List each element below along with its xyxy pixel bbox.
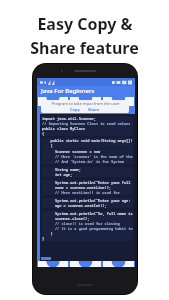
staticText: Share feature — [30, 37, 139, 59]
staticText: // It is a good programming habit to clo… — [42, 226, 133, 231]
staticText: String name; — [42, 167, 81, 172]
button[interactable]: Share — [84, 106, 104, 113]
staticText: Scanner scanner = new Scanner(System.in)… — [42, 149, 133, 154]
staticText: { — [42, 143, 53, 148]
button[interactable]: Program card — [103, 97, 134, 106]
staticText: // close() is used for closing scanner — [42, 221, 133, 226]
staticText: // Importing Scanner Class to read value… — [42, 121, 131, 126]
staticText: System.out.println("Enter your age: "); — [42, 198, 133, 203]
staticText: System.out.println("So, full name is " +… — [42, 211, 133, 216]
staticText: Easy Copy & — [37, 13, 133, 35]
staticText: name = scanner.nextLine(); — [42, 185, 111, 190]
staticText: public class MyClass — [42, 126, 86, 131]
staticText: Program to take input from the user — [51, 101, 120, 106]
staticText: // Here nextLine() is used for taking in… — [42, 190, 133, 195]
staticText: age = scanner.nextInt(); — [42, 203, 107, 208]
staticText: public static void main(String args[]) — [42, 138, 133, 143]
staticText: scanner.close(); — [42, 216, 90, 221]
button[interactable]: Copy — [66, 106, 84, 113]
staticText: // And 'System.in' is for System Input — [42, 159, 133, 164]
button[interactable]: Program card — [70, 261, 101, 267]
button[interactable]: Program card — [38, 261, 68, 267]
button[interactable]: Java For Beginners — [37, 86, 135, 96]
staticText: System.out.println("Enter your full name… — [42, 180, 133, 185]
staticText: int age; — [42, 172, 73, 177]
button[interactable]: Program card — [103, 261, 134, 267]
staticText: Java For Beginners — [41, 87, 95, 95]
staticText: { — [42, 131, 45, 136]
staticText: } — [42, 236, 45, 241]
button[interactable]: Program card — [70, 97, 101, 106]
staticText: // Here 'scanner' is the name of the obj… — [42, 154, 133, 159]
staticText: Copy — [70, 107, 80, 112]
staticText: import java.util.Scanner; — [42, 116, 96, 121]
staticText: Share — [88, 107, 100, 112]
button[interactable]: Program card — [38, 97, 68, 106]
staticText: } — [42, 231, 53, 236]
